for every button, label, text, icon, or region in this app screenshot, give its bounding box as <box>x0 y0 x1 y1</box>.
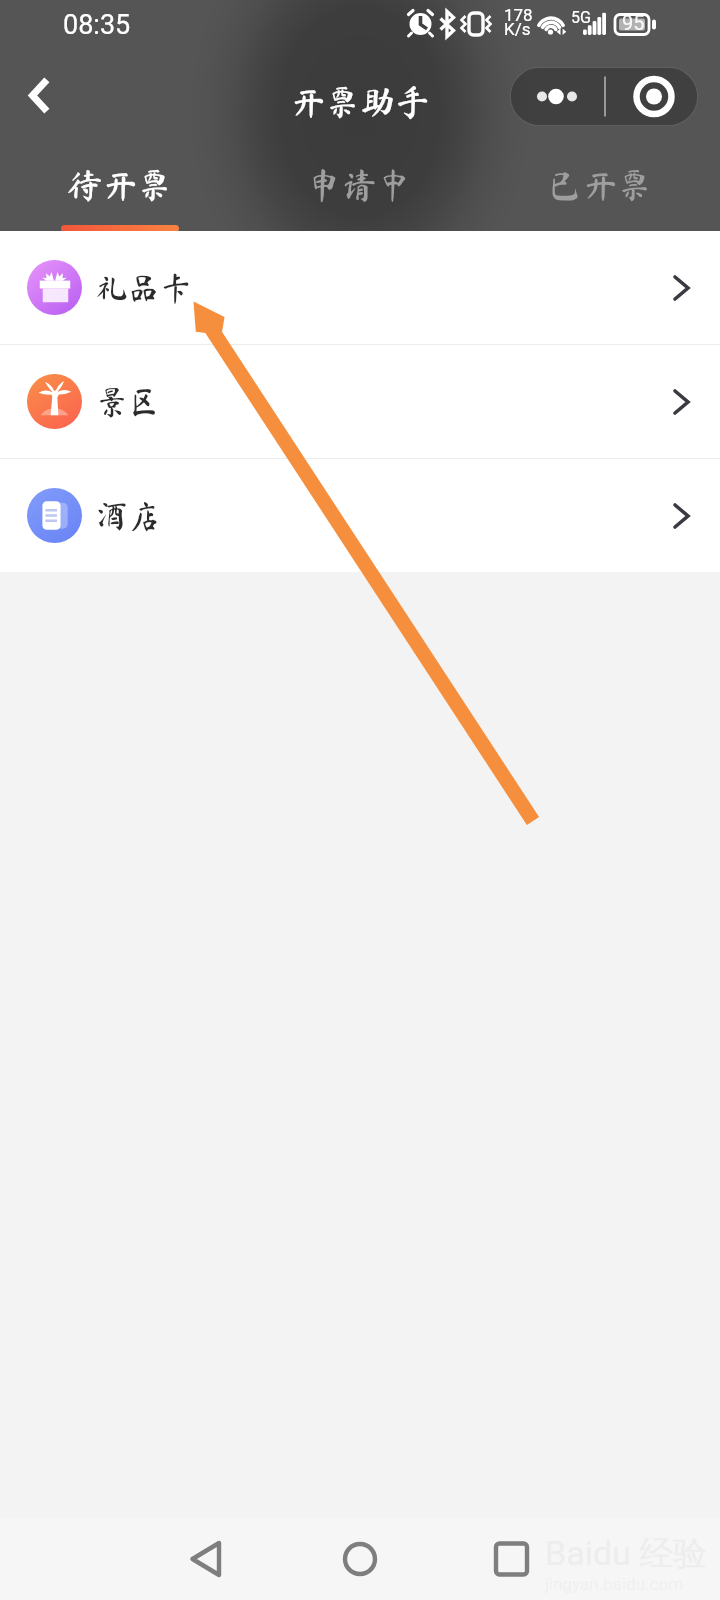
staticText: 08:35 <box>63 9 131 41</box>
button[interactable]: Menu and close <box>510 67 698 126</box>
staticText: 178 <box>504 5 533 25</box>
staticText: 待开票 <box>67 167 173 202</box>
button[interactable]: Back <box>166 1524 236 1594</box>
staticText: 95 <box>622 11 645 34</box>
button[interactable]: 已开票 <box>480 148 720 231</box>
button[interactable]: Home <box>325 1524 395 1594</box>
button[interactable]: 礼品卡 <box>0 231 720 344</box>
staticText: 申请中 <box>307 167 413 202</box>
button[interactable]: 申请中 <box>240 148 480 231</box>
button[interactable]: Recent apps <box>476 1524 546 1594</box>
staticText: K/s <box>504 19 531 39</box>
button[interactable]: Back <box>8 68 68 128</box>
staticText: 景区 <box>96 386 161 418</box>
button[interactable]: 景区 <box>0 345 720 458</box>
button[interactable]: 酒店 <box>0 459 720 572</box>
staticText: Baidu 经验 <box>545 1532 708 1575</box>
staticText: 酒店 <box>96 500 161 532</box>
staticText: 开票助手 <box>290 84 431 119</box>
button[interactable]: 待开票 <box>0 148 240 231</box>
staticText: 礼品卡 <box>96 272 193 304</box>
staticText: 5G <box>571 8 591 27</box>
staticText: 已开票 <box>547 167 653 202</box>
